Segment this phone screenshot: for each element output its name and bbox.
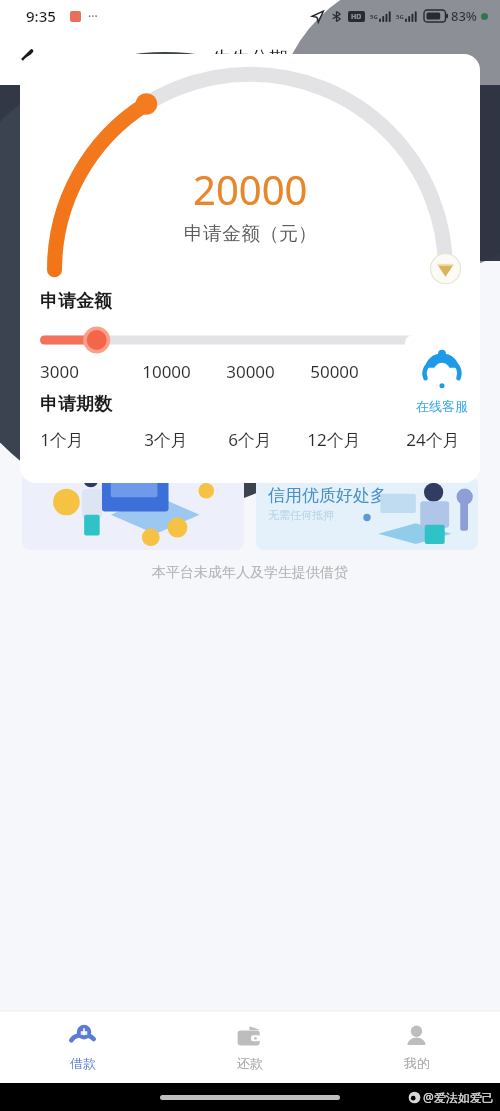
staticText: 83%: [451, 7, 477, 25]
button[interactable]: [40, 329, 460, 351]
staticText: 50000: [310, 360, 359, 383]
staticText: 30000: [226, 360, 275, 383]
button[interactable]: 随时借款: [256, 390, 478, 464]
button[interactable]: 去还款: [38, 291, 462, 337]
staticText: 1分钟认证: [36, 402, 119, 427]
staticText: 在线客服: [416, 398, 468, 414]
staticText: 3000: [40, 360, 79, 383]
staticText: 24个月: [406, 428, 460, 451]
staticText: 本平台未成年人及学生提供借贷: [152, 564, 348, 582]
staticText: 5G: [396, 13, 404, 21]
staticText: 9:35: [26, 6, 56, 26]
staticText: 10000: [142, 360, 191, 383]
button[interactable]: 在线客服: [405, 335, 479, 428]
staticText: 3个月: [144, 428, 188, 451]
staticText: 6个月: [228, 428, 272, 451]
staticText: 十分钟放款: [36, 430, 96, 445]
staticText: 提前还款，无违约金: [268, 422, 367, 436]
staticText: 申请金额（元）: [184, 222, 317, 246]
button[interactable]: 1分钟认证: [22, 390, 244, 550]
staticText: 申请期数: [40, 393, 112, 416]
staticText: 无需任何抵押: [268, 508, 334, 522]
staticText: 申请金额: [40, 290, 112, 313]
staticText: 还款: [237, 1055, 263, 1071]
button[interactable]: Back: [6, 37, 50, 81]
staticText: 信用优质好处多: [268, 485, 387, 506]
staticText: 高效 简单 安全: [141, 173, 286, 202]
staticText: 1个月: [40, 428, 84, 451]
staticText: ···: [88, 8, 98, 24]
button[interactable]: 信用优质好处多: [256, 476, 478, 550]
staticText: HD: [351, 12, 362, 22]
staticText: 12个月: [307, 428, 361, 451]
button[interactable]: 还款: [166, 1011, 333, 1083]
staticText: 5G: [370, 13, 378, 21]
staticText: 牛牛分期: [212, 47, 288, 71]
button[interactable]: 借款: [0, 1011, 166, 1083]
button[interactable]: 我的: [333, 1011, 500, 1083]
staticText: 产品亮点: [35, 355, 107, 378]
staticText: @爱法如爱己: [423, 1089, 494, 1105]
staticText: 随时借还: [154, 103, 346, 161]
staticText: 20000: [193, 162, 308, 216]
staticText: 我的: [404, 1055, 430, 1071]
staticText: 借款: [70, 1055, 96, 1071]
